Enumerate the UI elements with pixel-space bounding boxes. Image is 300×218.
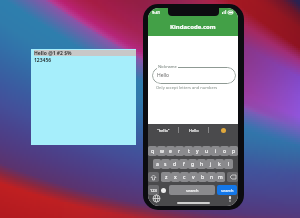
button[interactable]: o	[220, 146, 229, 156]
staticText: j	[210, 161, 212, 168]
staticText: d	[173, 161, 177, 168]
button[interactable]: d	[170, 159, 179, 169]
staticText: 9:41	[152, 10, 160, 15]
staticText: Hello	[157, 72, 170, 79]
button[interactable]: a	[153, 159, 161, 169]
button[interactable]: Shift	[148, 172, 159, 182]
staticText: "hello"	[157, 128, 170, 133]
staticText: 123456	[34, 57, 52, 64]
button[interactable]: r	[175, 146, 184, 156]
staticText: t	[188, 148, 190, 155]
staticText: g	[191, 161, 195, 168]
button[interactable]: v	[189, 172, 198, 182]
button[interactable]: Dictation	[225, 194, 234, 203]
staticText: f	[183, 161, 185, 168]
button[interactable]: h	[197, 159, 206, 169]
button[interactable]: w	[157, 146, 166, 156]
button[interactable]: m	[216, 172, 225, 182]
button[interactable]: n	[207, 172, 216, 182]
button[interactable]: u	[202, 146, 211, 156]
button[interactable]: k	[215, 159, 224, 169]
button[interactable]: q	[148, 146, 157, 156]
button[interactable]: g	[188, 159, 197, 169]
button[interactable]: b	[198, 172, 207, 182]
staticText: p	[232, 148, 236, 155]
staticText: s	[164, 161, 167, 168]
button[interactable]: "hello"	[148, 128, 178, 133]
button[interactable]: t	[184, 146, 193, 156]
staticText: u	[205, 148, 209, 155]
button[interactable]: x	[171, 172, 180, 182]
staticText: Kindacode.com	[170, 23, 216, 31]
staticText: c	[183, 174, 186, 181]
button[interactable]: 123	[148, 185, 159, 195]
staticText: Hello	[189, 128, 199, 133]
button[interactable]: Backspace	[227, 172, 238, 182]
staticText: h	[200, 161, 204, 168]
staticText: b	[201, 174, 205, 181]
button[interactable]: Change keyboard	[152, 194, 161, 203]
staticText: search	[186, 188, 199, 193]
staticText: e	[169, 148, 172, 155]
button[interactable]: s	[161, 159, 170, 169]
staticText: o	[223, 148, 227, 155]
staticText: l	[228, 161, 230, 168]
button[interactable]: f	[179, 159, 188, 169]
button[interactable]: Hello	[152, 67, 236, 84]
button[interactable]: y	[193, 146, 202, 156]
button[interactable]: p	[229, 146, 238, 156]
staticText: a	[156, 161, 159, 168]
staticText: i	[215, 148, 217, 155]
staticText: Nickname	[158, 64, 177, 69]
staticText: w	[160, 148, 164, 155]
staticText: Hello @1 #2 $%	[34, 50, 72, 57]
staticText: search	[221, 188, 234, 193]
button[interactable]: c	[180, 172, 189, 182]
button[interactable]: search	[217, 185, 237, 195]
staticText: m	[218, 174, 223, 181]
staticText: z	[165, 174, 168, 181]
staticText: v	[192, 174, 195, 181]
staticText: r	[178, 148, 181, 155]
staticText: n	[210, 174, 214, 181]
staticText: k	[218, 161, 221, 168]
button[interactable]: Hello	[179, 128, 208, 133]
staticText: q	[151, 148, 155, 155]
button[interactable]: search	[169, 185, 215, 195]
staticText: y	[196, 148, 199, 155]
staticText: Only accept letters and numbers	[156, 85, 218, 90]
button[interactable]: l	[224, 159, 233, 169]
button[interactable]: z	[161, 172, 171, 182]
button[interactable]: j	[206, 159, 215, 169]
button[interactable]: Emoji	[159, 185, 168, 195]
staticText: 123	[150, 188, 157, 193]
button[interactable]: i	[211, 146, 220, 156]
button[interactable]: e	[166, 146, 175, 156]
staticText: x	[174, 174, 177, 181]
button[interactable]	[209, 128, 238, 133]
